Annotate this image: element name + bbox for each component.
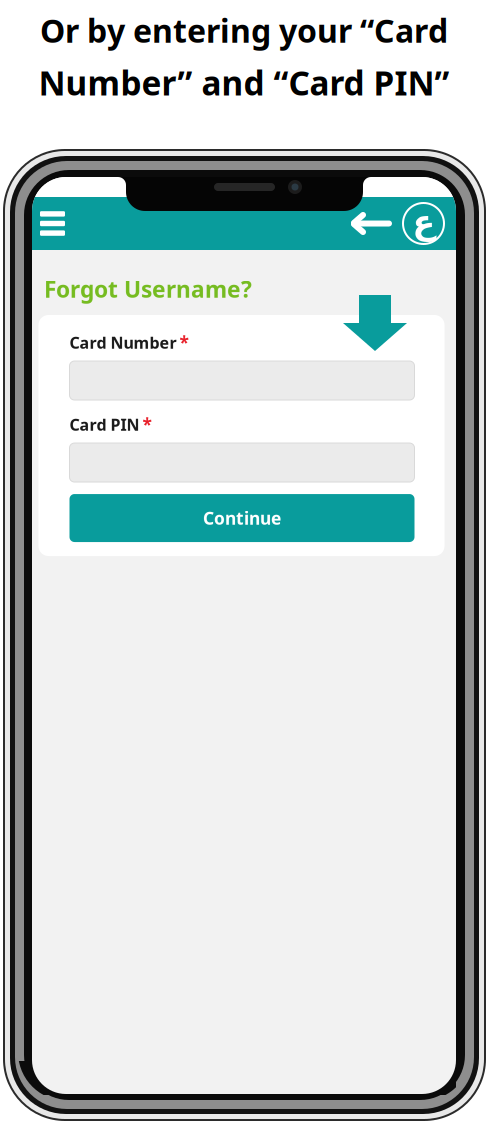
staticText: Card Number	[69, 332, 176, 353]
staticText: Card PIN	[69, 414, 139, 435]
staticText: ع	[412, 204, 435, 241]
staticText: *	[179, 331, 188, 354]
staticText: Or by entering your “Card	[40, 9, 448, 51]
button[interactable]: Menu	[34, 201, 71, 245]
staticText: Forgot Username?	[44, 274, 252, 304]
staticText: Number” and “Card PIN”	[38, 60, 449, 105]
button[interactable]: Back	[343, 201, 400, 245]
staticText: Continue	[203, 506, 281, 529]
button[interactable]: Continue	[69, 494, 414, 542]
staticText: *	[142, 413, 151, 436]
button[interactable]: Arabic language	[400, 199, 447, 247]
